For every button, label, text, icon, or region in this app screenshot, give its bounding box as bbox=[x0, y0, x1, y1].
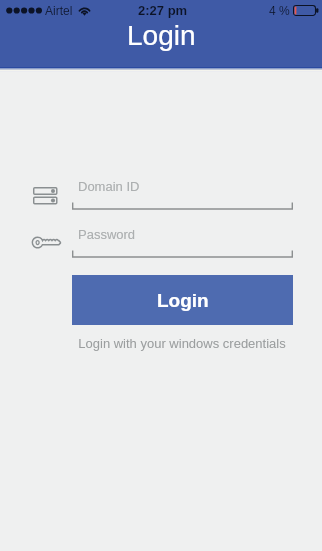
staticText: Login with your windows credentials bbox=[78, 336, 286, 351]
staticText: 4 % bbox=[269, 4, 290, 17]
staticText: Domain ID bbox=[78, 179, 140, 194]
staticText: Password bbox=[78, 227, 136, 242]
staticText: Login bbox=[157, 290, 209, 311]
other: Password bbox=[31, 235, 62, 250]
staticText: Airtel bbox=[45, 4, 73, 17]
button[interactable]: Domain ID bbox=[72, 178, 293, 212]
other: Wi-Fi bbox=[78, 5, 91, 16]
button[interactable]: Login bbox=[72, 275, 293, 325]
other: Battery 4 percent bbox=[293, 5, 319, 16]
other: Domain bbox=[33, 187, 57, 205]
staticText: 2:27 pm bbox=[138, 3, 188, 18]
button[interactable]: Password bbox=[72, 226, 293, 260]
staticText: Login bbox=[127, 20, 196, 51]
